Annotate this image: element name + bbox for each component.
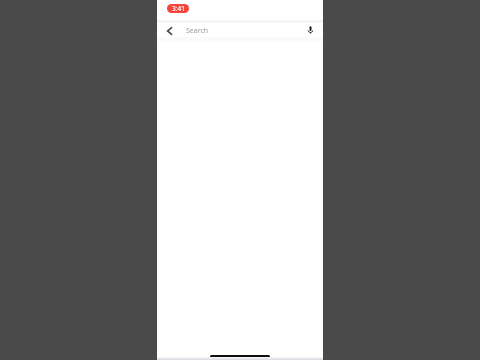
- staticText: Search: [186, 26, 209, 36]
- button[interactable]: Voice search: [305, 21, 323, 41]
- button[interactable]: Home: [210, 355, 270, 358]
- button[interactable]: Back: [157, 21, 175, 41]
- staticText: 3:41: [172, 4, 185, 13]
- button[interactable]: Search: [175, 20, 305, 42]
- button[interactable]: Clock 3:41: [167, 4, 189, 13]
